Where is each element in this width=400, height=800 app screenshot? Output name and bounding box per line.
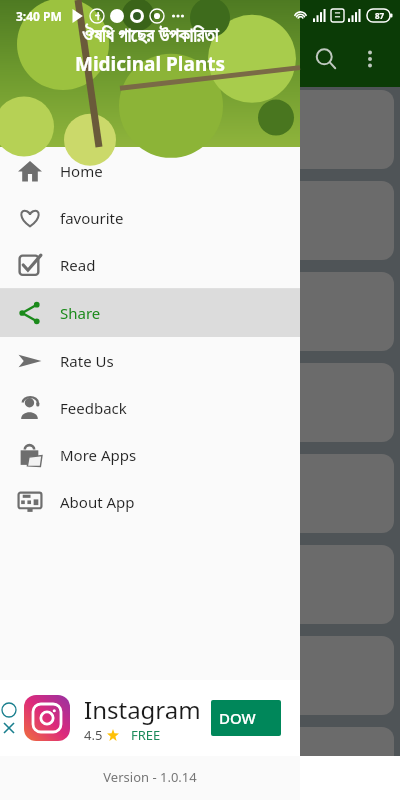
staticText: Midicinal Plants bbox=[0, 51, 300, 77]
staticText: Instagram bbox=[84, 693, 201, 726]
staticText: 3:40 PM bbox=[16, 8, 62, 24]
staticText: Version - 1.0.14 bbox=[0, 768, 300, 786]
button[interactable] bbox=[6, 727, 394, 800]
staticText: 4.5 bbox=[84, 726, 103, 744]
staticText: DOW bbox=[219, 708, 256, 728]
button[interactable]: DOW bbox=[211, 700, 281, 736]
button[interactable]: Read bbox=[0, 241, 300, 288]
button[interactable] bbox=[6, 90, 394, 169]
button[interactable]: Share bbox=[0, 289, 300, 337]
button[interactable]: favourite bbox=[0, 194, 300, 241]
button[interactable]: Rate Us bbox=[0, 337, 300, 384]
staticText: Rate Us bbox=[60, 351, 114, 371]
button[interactable] bbox=[6, 272, 394, 351]
staticText: More Apps bbox=[60, 445, 137, 465]
button[interactable]: Search bbox=[304, 37, 348, 81]
button[interactable]: About App bbox=[0, 478, 300, 525]
staticText: FREE bbox=[131, 726, 161, 744]
button[interactable] bbox=[6, 181, 394, 260]
button[interactable] bbox=[6, 454, 394, 533]
staticText: Home bbox=[60, 161, 103, 181]
button[interactable] bbox=[6, 363, 394, 442]
staticText: Read bbox=[60, 255, 96, 275]
button[interactable]: More Apps bbox=[0, 431, 300, 478]
button[interactable]: Home bbox=[0, 147, 300, 194]
staticText: Feedback bbox=[60, 398, 127, 418]
staticText: Share bbox=[60, 303, 101, 323]
staticText: favourite bbox=[60, 208, 124, 228]
staticText: ঔষধি গাছের উপকারিতা bbox=[0, 22, 300, 48]
button[interactable] bbox=[6, 545, 394, 624]
button[interactable] bbox=[6, 636, 394, 715]
button[interactable]: Feedback bbox=[0, 384, 300, 431]
staticText: 87 bbox=[375, 10, 385, 21]
staticText: About App bbox=[60, 492, 135, 512]
button[interactable]: More options bbox=[348, 37, 392, 81]
